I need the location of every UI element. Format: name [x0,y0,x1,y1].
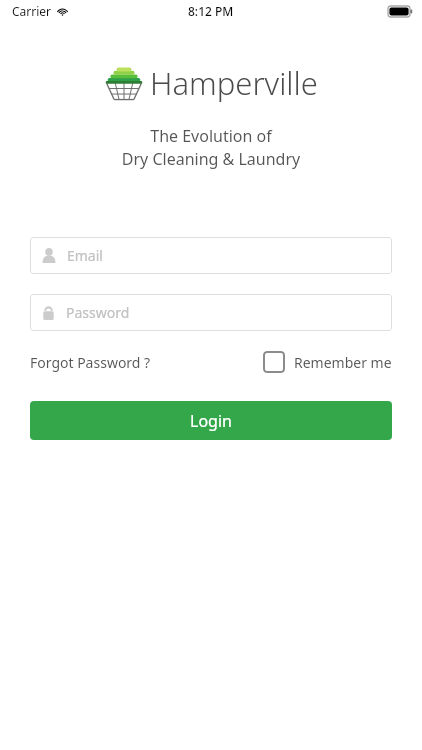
staticText: Email [67,246,103,265]
button[interactable]: Email [30,237,392,274]
staticText: Hamperville [150,62,318,104]
staticText: The Evolution of Dry Cleaning & Laundry [0,125,422,170]
button[interactable]: Password [30,294,392,331]
staticText: 8:12 PM [188,3,234,19]
staticText: Carrier [12,3,52,19]
button[interactable]: Forgot Password ? [30,350,151,375]
staticText: Login [190,410,232,432]
button[interactable]: Remember me [263,349,392,375]
staticText: Forgot Password ? [30,353,151,372]
staticText: Password [66,303,130,322]
button[interactable]: Login [30,401,392,440]
other: Hamperville logo [105,65,143,101]
staticText: Remember me [294,353,392,372]
